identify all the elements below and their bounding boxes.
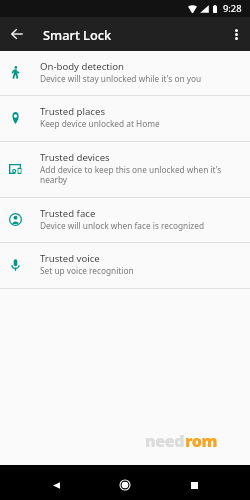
staticText: Device will unlock when face is recogniz… xyxy=(40,220,205,231)
staticText: need xyxy=(145,430,185,452)
staticText: Trusted places xyxy=(40,105,105,118)
staticText: Set up voice recognition xyxy=(40,265,134,276)
button[interactable]: Trusted voice xyxy=(0,243,250,288)
staticText: Keep device unlocked at Home xyxy=(40,118,160,129)
staticText: Trusted face xyxy=(40,207,96,220)
staticText: Trusted devices xyxy=(40,151,110,164)
staticText: 9:28 xyxy=(223,2,242,15)
staticText: Trusted voice xyxy=(40,252,100,265)
staticText: Device will stay unlocked while it's on … xyxy=(40,73,202,84)
staticText: Add device to keep this one unlocked whe… xyxy=(40,164,222,186)
button[interactable]: Back xyxy=(38,470,74,500)
staticText: On-body detection xyxy=(40,60,124,73)
staticText: Smart Lock xyxy=(43,26,112,43)
button[interactable]: More options xyxy=(223,17,250,51)
staticText: rom xyxy=(185,430,218,452)
button[interactable]: Back xyxy=(0,17,34,51)
button[interactable]: Trusted face xyxy=(0,198,250,242)
button[interactable]: Trusted places xyxy=(0,96,250,141)
button[interactable]: On-body detection xyxy=(0,51,250,95)
button[interactable]: Home xyxy=(107,470,143,500)
button[interactable]: Trusted devices xyxy=(0,142,250,197)
button[interactable]: Recents xyxy=(176,470,212,500)
